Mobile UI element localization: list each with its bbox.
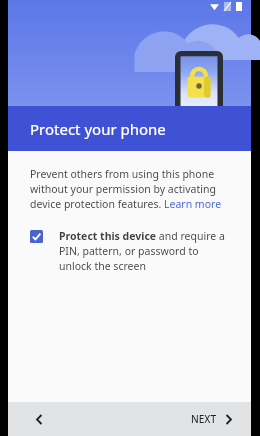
button[interactable]: NEXT bbox=[187, 407, 237, 431]
staticText: NEXT bbox=[191, 412, 217, 426]
staticText: Protect your phone bbox=[30, 119, 166, 139]
button[interactable]: Protect this device and require a PIN, p… bbox=[30, 229, 233, 273]
staticText: Prevent others from using this phone wit… bbox=[30, 167, 233, 211]
button[interactable]: Back bbox=[26, 406, 52, 432]
staticText: Protect this device and require a PIN, p… bbox=[59, 229, 233, 273]
